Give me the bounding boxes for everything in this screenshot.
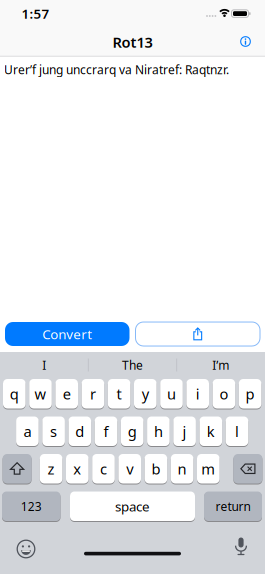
button[interactable]: I’m bbox=[178, 353, 264, 377]
button[interactable]: Info bbox=[237, 33, 253, 49]
staticText: f bbox=[103, 421, 108, 441]
button[interactable]: e bbox=[55, 378, 78, 409]
staticText: i bbox=[196, 384, 200, 403]
button[interactable]: j bbox=[173, 416, 196, 446]
staticText: k bbox=[207, 421, 215, 441]
button[interactable]: t bbox=[108, 378, 130, 409]
button[interactable]: I bbox=[1, 353, 87, 377]
button[interactable]: Share bbox=[135, 322, 260, 346]
staticText: Convert bbox=[42, 325, 92, 343]
staticText: t bbox=[117, 384, 122, 403]
staticText: v bbox=[126, 459, 133, 478]
staticText: z bbox=[48, 459, 55, 478]
staticText: j bbox=[183, 421, 187, 441]
button[interactable]: p bbox=[239, 378, 261, 409]
staticText: space bbox=[115, 497, 150, 515]
staticText: 123 bbox=[21, 498, 42, 514]
button[interactable]: k bbox=[199, 416, 222, 446]
staticText: The bbox=[122, 357, 143, 373]
staticText: a bbox=[23, 421, 31, 441]
button[interactable]: n bbox=[171, 453, 193, 484]
button[interactable]: w bbox=[29, 378, 52, 409]
staticText: r bbox=[90, 384, 96, 403]
button[interactable]: u bbox=[160, 378, 183, 409]
button[interactable]: Emoji bbox=[15, 538, 37, 560]
button[interactable]: a bbox=[16, 416, 39, 446]
staticText: w bbox=[34, 384, 46, 403]
staticText: h bbox=[154, 421, 163, 441]
button[interactable]: i bbox=[186, 378, 209, 409]
staticText: I’m bbox=[212, 357, 229, 373]
staticText: d bbox=[75, 421, 84, 441]
staticText: g bbox=[128, 421, 137, 441]
button[interactable]: z bbox=[40, 453, 62, 484]
button[interactable]: Convert bbox=[5, 322, 129, 346]
button[interactable]: r bbox=[82, 378, 104, 409]
button[interactable]: y bbox=[134, 378, 157, 409]
staticText: e bbox=[63, 384, 71, 403]
staticText: u bbox=[167, 384, 176, 403]
button[interactable]: b bbox=[145, 453, 167, 484]
staticText: y bbox=[142, 384, 149, 403]
staticText: I bbox=[42, 357, 46, 373]
staticText: o bbox=[219, 384, 228, 403]
staticText: n bbox=[178, 459, 187, 478]
button[interactable]: The bbox=[89, 353, 175, 377]
staticText: p bbox=[246, 384, 255, 403]
button[interactable]: q bbox=[3, 378, 26, 409]
staticText: Rot13 bbox=[112, 32, 152, 52]
button[interactable]: Dictation bbox=[234, 536, 248, 556]
staticText: 1:57 bbox=[21, 5, 49, 22]
button[interactable]: g bbox=[121, 416, 143, 446]
staticText: s bbox=[50, 421, 57, 441]
button[interactable]: s bbox=[42, 416, 65, 446]
staticText: m bbox=[201, 459, 215, 478]
button[interactable]: Shift bbox=[3, 453, 32, 484]
button[interactable]: space bbox=[70, 491, 195, 521]
staticText: l bbox=[235, 421, 239, 441]
button[interactable]: c bbox=[92, 453, 115, 484]
button[interactable]: x bbox=[66, 453, 89, 484]
button[interactable]: m bbox=[197, 453, 220, 484]
staticText: x bbox=[73, 459, 81, 478]
staticText: b bbox=[151, 459, 160, 478]
button[interactable]: l bbox=[226, 416, 248, 446]
button[interactable]: Delete bbox=[233, 453, 262, 484]
staticText: return bbox=[215, 498, 250, 514]
button[interactable]: o bbox=[213, 378, 235, 409]
button[interactable]: h bbox=[147, 416, 170, 446]
button[interactable]: f bbox=[95, 416, 117, 446]
staticText: Urer’f jung unccrarq va Niratref: Raqtnz… bbox=[4, 61, 229, 77]
button[interactable]: 123 bbox=[2, 491, 60, 521]
button[interactable]: v bbox=[118, 453, 141, 484]
staticText: q bbox=[10, 384, 19, 403]
button[interactable]: d bbox=[68, 416, 91, 446]
staticText: c bbox=[100, 459, 107, 478]
button[interactable]: return bbox=[204, 491, 262, 521]
